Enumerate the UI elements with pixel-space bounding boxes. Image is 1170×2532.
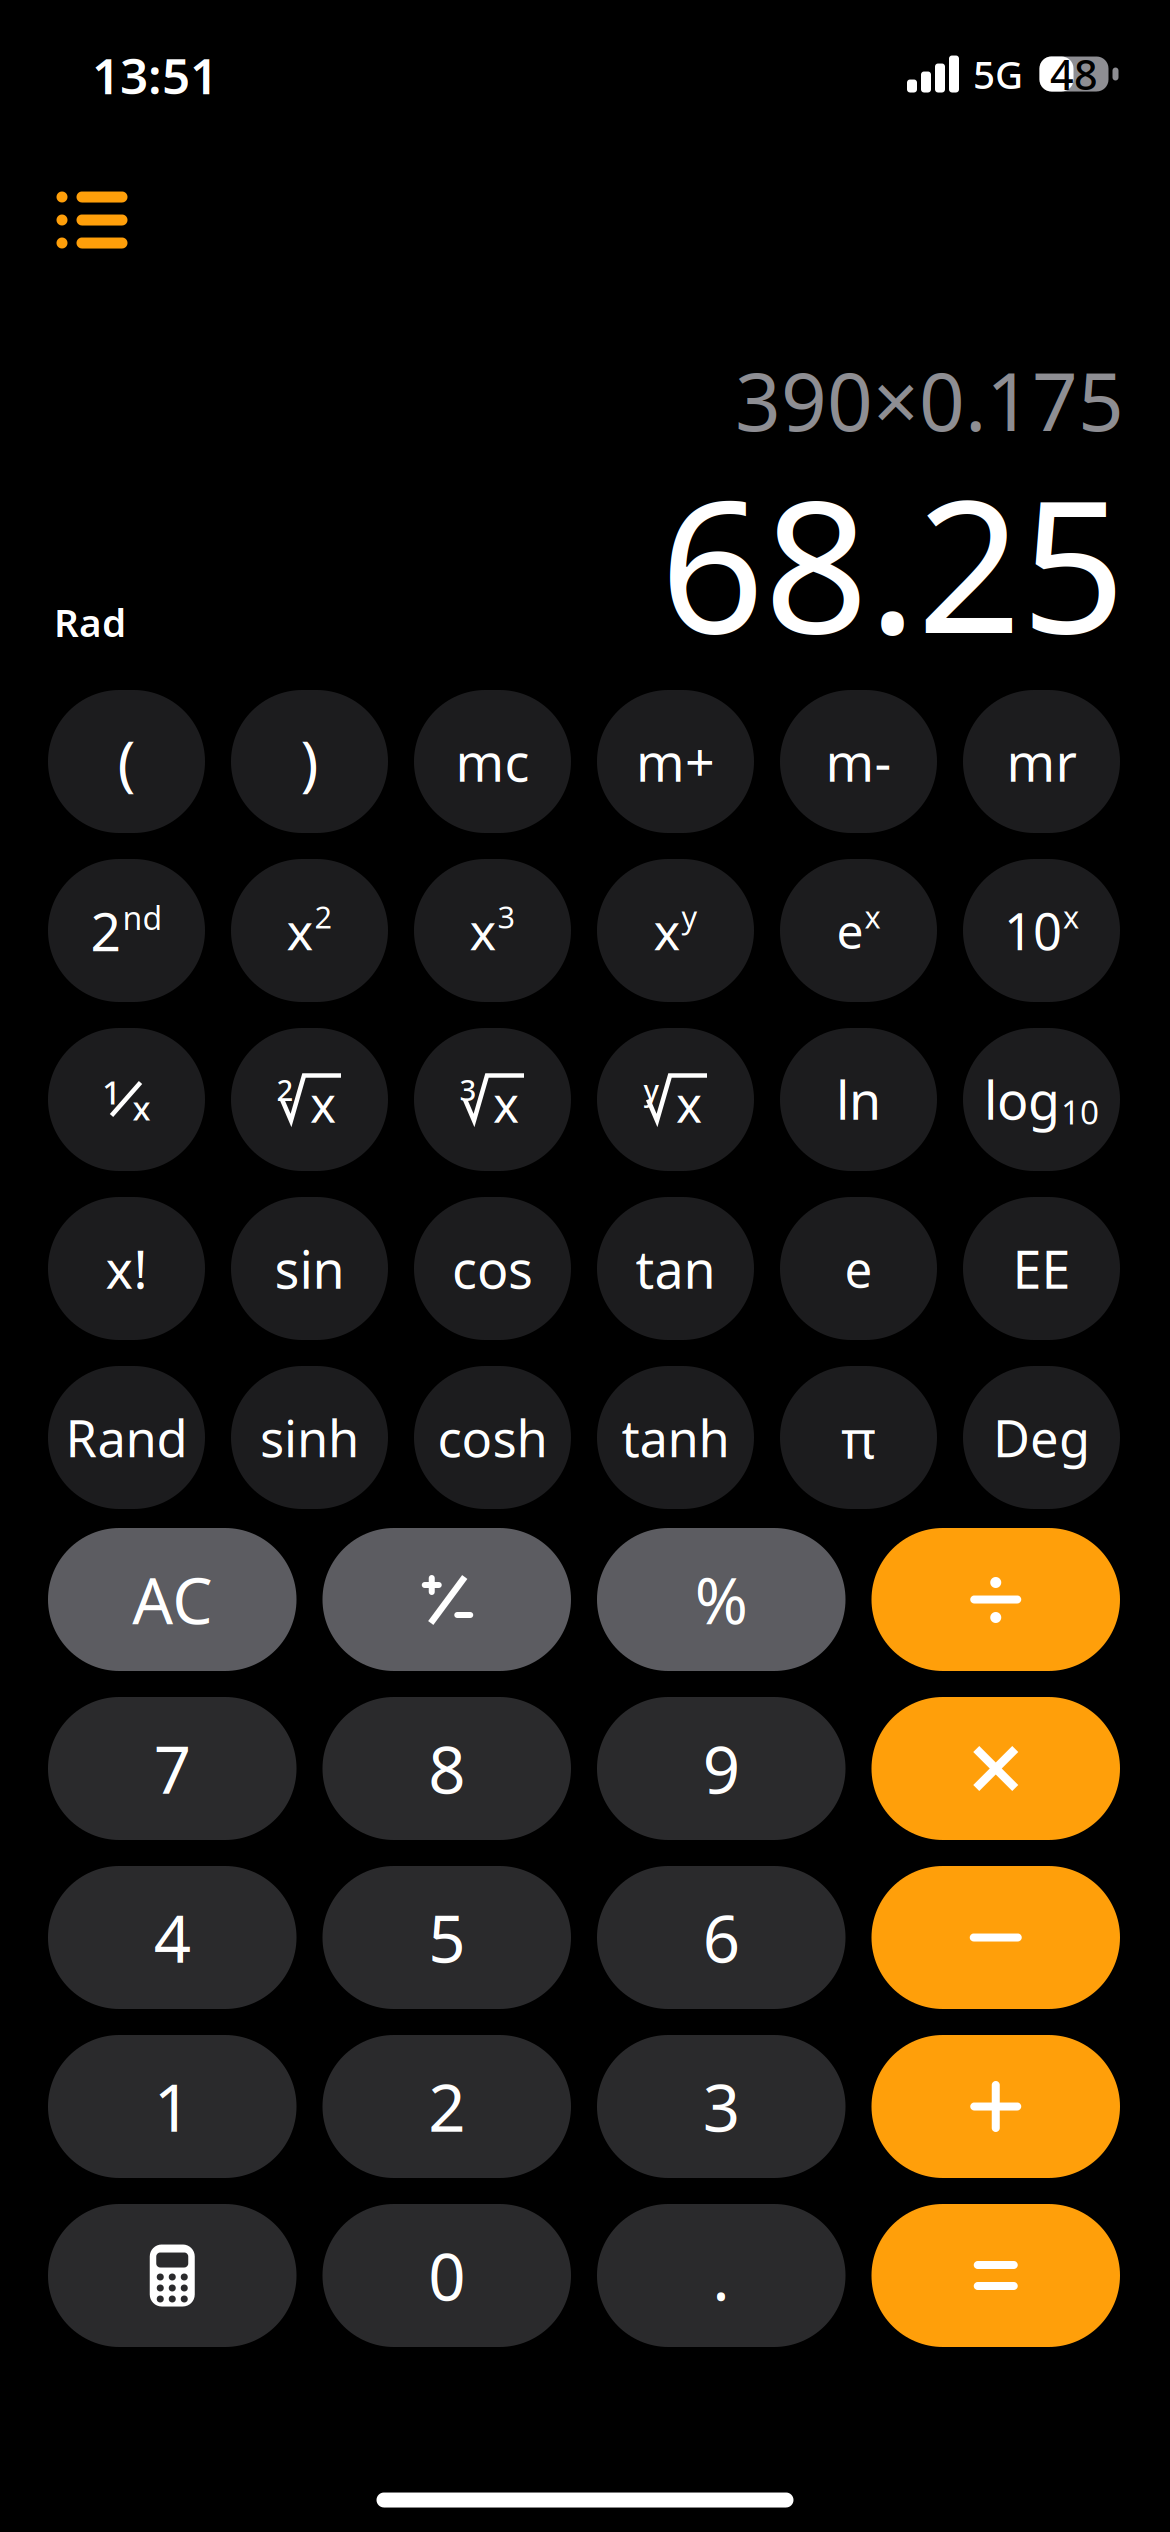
staticText: . — [712, 2232, 730, 2319]
button[interactable]: 3 — [597, 2035, 845, 2178]
staticText: AC — [132, 1557, 212, 1642]
staticText: 48 — [1050, 47, 1098, 101]
staticText: ln — [836, 1065, 881, 1134]
button[interactable]: 0 — [322, 2204, 571, 2347]
staticText: 2 — [90, 895, 121, 966]
button[interactable] — [871, 2204, 1120, 2347]
button[interactable]: 1 — [48, 1028, 205, 1171]
staticText: ( — [117, 722, 135, 801]
button[interactable]: History — [0, 165, 200, 275]
button[interactable]: Rand — [48, 1366, 205, 1509]
staticText: 7 — [154, 1725, 191, 1812]
staticText: nd — [122, 896, 162, 939]
button[interactable] — [871, 1697, 1120, 1840]
staticText: x — [469, 897, 496, 964]
button[interactable]: e — [780, 1197, 937, 1340]
button[interactable]: 9 — [597, 1697, 845, 1840]
staticText: 2 — [428, 2063, 465, 2150]
staticText: y — [643, 1070, 658, 1109]
staticText: x — [864, 896, 880, 937]
button[interactable]: log — [963, 1028, 1120, 1171]
staticText: x — [310, 1071, 336, 1136]
button[interactable]: ) — [231, 690, 388, 833]
button[interactable]: 1 — [48, 2035, 296, 2178]
button[interactable]: 3 — [414, 1028, 571, 1171]
staticText: mr — [1006, 727, 1076, 796]
staticText: 13:51 — [92, 42, 218, 108]
button[interactable]: x — [414, 859, 571, 1002]
button[interactable]: cos — [414, 1197, 571, 1340]
button[interactable]: 6 — [597, 1866, 845, 2009]
button[interactable]: ln — [780, 1028, 937, 1171]
button[interactable]: x! — [48, 1197, 205, 1340]
button[interactable]: 2 — [322, 2035, 571, 2178]
button[interactable]: 5 — [322, 1866, 571, 2009]
staticText: tan — [635, 1234, 715, 1303]
button[interactable]: x — [597, 859, 754, 1002]
button[interactable]: 10 — [963, 859, 1120, 1002]
staticText: 5G — [973, 48, 1023, 100]
button[interactable]: m- — [780, 690, 937, 833]
button[interactable]: % — [597, 1528, 845, 1671]
staticText: 6 — [703, 1894, 740, 1981]
staticText: Deg — [993, 1404, 1090, 1471]
staticText: m+ — [636, 727, 715, 796]
staticText: % — [695, 1557, 748, 1642]
staticText: 4 — [154, 1894, 191, 1981]
button[interactable] — [871, 2035, 1120, 2178]
staticText: 390×0.175 — [735, 347, 1124, 453]
staticText: 2 — [314, 896, 332, 937]
staticText: 10 — [1061, 1089, 1099, 1134]
button[interactable]: cosh — [414, 1366, 571, 1509]
button[interactable]: e — [780, 859, 937, 1002]
button[interactable]: sin — [231, 1197, 388, 1340]
button[interactable]: 2 — [48, 859, 205, 1002]
staticText: tanh — [621, 1404, 729, 1471]
button[interactable] — [48, 2204, 296, 2347]
staticText: 68.25 — [660, 441, 1125, 683]
button[interactable] — [871, 1528, 1120, 1671]
staticText: cosh — [437, 1404, 547, 1471]
button[interactable]: sinh — [231, 1366, 388, 1509]
button[interactable] — [322, 1528, 571, 1671]
button[interactable]: π — [780, 1366, 937, 1509]
staticText: 10 — [1004, 897, 1062, 964]
button[interactable]: 2 — [231, 1028, 388, 1171]
button[interactable]: m+ — [597, 690, 754, 833]
button[interactable]: 7 — [48, 1697, 296, 1840]
staticText: cos — [452, 1234, 533, 1303]
button[interactable]: x — [231, 859, 388, 1002]
button[interactable] — [871, 1866, 1120, 2009]
staticText: x! — [105, 1234, 147, 1303]
staticText: π — [841, 1402, 876, 1473]
staticText: x — [286, 897, 313, 964]
staticText: x — [132, 1085, 150, 1130]
button[interactable]: 4 — [48, 1866, 296, 2009]
button[interactable]: 8 — [322, 1697, 571, 1840]
staticText: 3 — [497, 896, 515, 937]
button[interactable]: EE — [963, 1197, 1120, 1340]
button[interactable]: y — [597, 1028, 754, 1171]
button[interactable]: Deg — [963, 1366, 1120, 1509]
button[interactable]: . — [597, 2204, 845, 2347]
staticText: m- — [825, 727, 891, 796]
staticText: x — [1063, 896, 1079, 937]
staticText: 8 — [428, 1725, 465, 1812]
staticText: x — [493, 1071, 519, 1136]
button[interactable]: tan — [597, 1197, 754, 1340]
staticText: x — [676, 1071, 702, 1136]
button[interactable]: tanh — [597, 1366, 754, 1509]
staticText: Rad — [54, 596, 126, 648]
staticText: 9 — [703, 1725, 740, 1812]
staticText: 3 — [703, 2063, 740, 2150]
button[interactable]: ( — [48, 690, 205, 833]
staticText: y — [681, 896, 697, 937]
staticText: 2 — [276, 1070, 293, 1109]
staticText: x — [653, 897, 680, 964]
staticText: Rand — [65, 1404, 187, 1471]
button[interactable]: mr — [963, 690, 1120, 833]
button[interactable]: mc — [414, 690, 571, 833]
button[interactable]: AC — [48, 1528, 296, 1671]
staticText: e — [844, 1236, 872, 1301]
staticText: ) — [300, 722, 318, 801]
